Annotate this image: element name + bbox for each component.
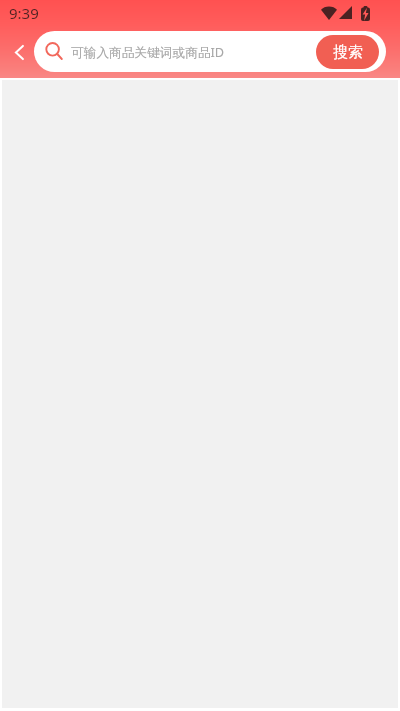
staticText: 可输入商品关键词或商品ID	[71, 43, 225, 60]
button[interactable]: Back	[3, 36, 35, 68]
button[interactable]: 可输入商品关键词或商品ID	[34, 31, 386, 72]
staticText: 搜索	[333, 43, 363, 62]
staticText: 9:39	[9, 3, 39, 23]
button[interactable]: 搜索	[316, 35, 379, 69]
